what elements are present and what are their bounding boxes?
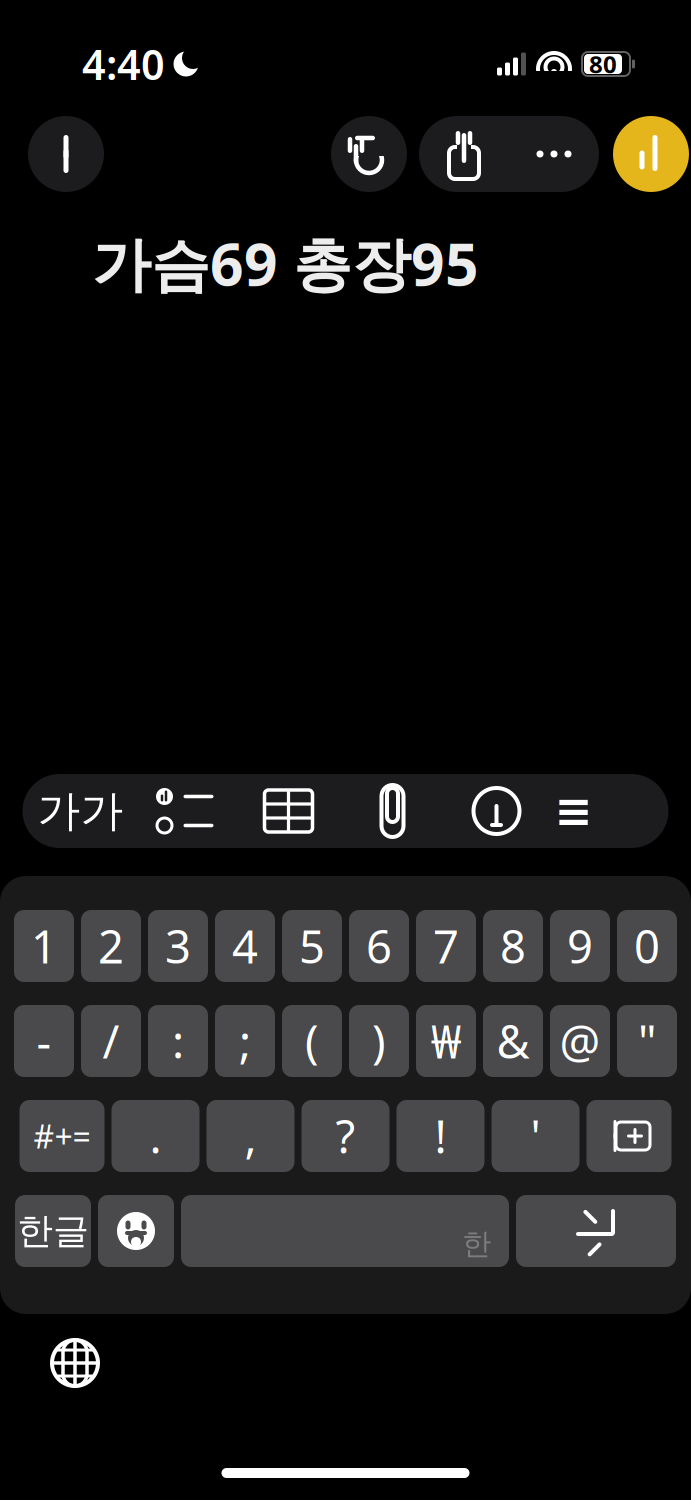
button[interactable]: Attach (340, 774, 444, 848)
button[interactable]: Checklist (132, 774, 236, 848)
staticText: & (496, 1011, 529, 1071)
button[interactable]: 1 (14, 910, 74, 982)
button[interactable]: 가가 (28, 774, 132, 848)
staticText: 가슴69 총장95 (92, 224, 479, 302)
button[interactable]: 9 (550, 910, 610, 982)
button[interactable]: Share (419, 116, 509, 192)
button[interactable]: Table (236, 774, 340, 848)
staticText: ! (434, 1106, 446, 1166)
button[interactable]: 3 (148, 910, 208, 982)
staticText: / (102, 1011, 119, 1071)
staticText: ; (239, 1011, 251, 1071)
button[interactable]: More formatting (548, 774, 598, 848)
staticText: 9 (567, 916, 593, 976)
button[interactable]: ) (349, 1005, 409, 1077)
button[interactable]: : (148, 1005, 208, 1077)
staticText: ₩ (431, 1011, 461, 1071)
button[interactable]: Switch keyboard (40, 1328, 110, 1398)
staticText: - (36, 1011, 51, 1071)
button[interactable]: ? (301, 1100, 389, 1172)
button[interactable]: Delete (586, 1100, 671, 1172)
staticText: 6 (366, 916, 392, 976)
staticText: 4 (232, 916, 258, 976)
button[interactable]: " (617, 1005, 677, 1077)
staticText: ? (335, 1106, 355, 1166)
button[interactable]: Space (181, 1195, 509, 1267)
staticText: ≡ (554, 785, 592, 837)
button[interactable]: 7 (416, 910, 476, 982)
button[interactable]: #+= (19, 1100, 104, 1172)
staticText: 한 (462, 1226, 491, 1262)
button[interactable]: 한글 (15, 1195, 91, 1267)
button[interactable]: & (483, 1005, 543, 1077)
button[interactable]: 8 (483, 910, 543, 982)
staticText: 2 (98, 916, 124, 976)
button[interactable]: Back (28, 116, 104, 192)
button[interactable]: Done (613, 116, 689, 192)
staticText: ) (372, 1011, 386, 1071)
button[interactable]: ; (215, 1005, 275, 1077)
button[interactable]: 5 (282, 910, 342, 982)
button[interactable]: / (81, 1005, 141, 1077)
button[interactable]: , (206, 1100, 294, 1172)
button[interactable]: 0 (617, 910, 677, 982)
staticText: #+= (33, 1115, 90, 1157)
staticText: : (172, 1011, 184, 1071)
staticText: . (149, 1106, 161, 1166)
button[interactable]: . (111, 1100, 199, 1172)
staticText: 7 (433, 916, 459, 976)
button[interactable]: More (509, 116, 599, 192)
button[interactable]: Emoji (98, 1195, 174, 1267)
staticText: ' (530, 1106, 540, 1166)
staticText: @ (559, 1011, 600, 1071)
button[interactable]: ! (396, 1100, 484, 1172)
staticText: 4:40 (82, 37, 165, 91)
button[interactable]: Undo (331, 116, 407, 192)
button[interactable]: ( (282, 1005, 342, 1077)
staticText: 가가 (37, 785, 123, 837)
button[interactable]: Markup (444, 774, 548, 848)
button[interactable]: 6 (349, 910, 409, 982)
staticText: 1 (31, 916, 57, 976)
staticText: , (244, 1106, 256, 1166)
staticText: 8 (500, 916, 526, 976)
button[interactable]: ₩ (416, 1005, 476, 1077)
staticText: " (638, 1011, 656, 1071)
button[interactable]: Return (516, 1195, 676, 1267)
button[interactable]: 2 (81, 910, 141, 982)
staticText: 80 (589, 48, 617, 80)
staticText: 0 (634, 916, 660, 976)
staticText: ( (305, 1011, 319, 1071)
staticText: 3 (165, 916, 191, 976)
staticText: 한글 (17, 1209, 89, 1253)
button[interactable]: @ (550, 1005, 610, 1077)
staticText: 5 (299, 916, 325, 976)
button[interactable]: ' (491, 1100, 579, 1172)
button[interactable]: - (14, 1005, 74, 1077)
button[interactable]: 4 (215, 910, 275, 982)
